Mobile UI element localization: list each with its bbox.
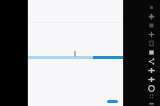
button[interactable]: Share xyxy=(145,57,158,66)
button[interactable]: Selection handle xyxy=(107,100,118,103)
button[interactable]: Move xyxy=(145,66,158,75)
button[interactable]: Progress track xyxy=(28,56,93,59)
button[interactable]: Add xyxy=(145,30,158,39)
button[interactable]: Document xyxy=(145,39,158,48)
button[interactable]: More xyxy=(145,99,158,106)
button[interactable]: Fill xyxy=(145,48,158,57)
button[interactable]: Grid xyxy=(145,92,158,101)
button[interactable]: Settings xyxy=(145,84,158,93)
button[interactable]: Transform xyxy=(145,75,158,84)
button[interactable]: Layers xyxy=(145,21,158,30)
button[interactable]: Crop xyxy=(145,3,158,12)
button[interactable]: Effects xyxy=(145,12,158,21)
